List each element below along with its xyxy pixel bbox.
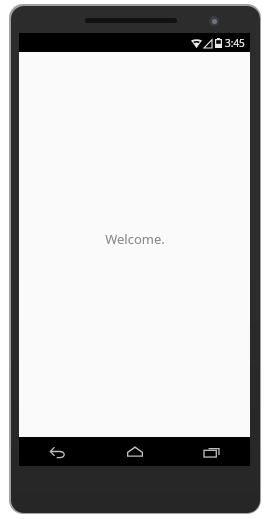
staticText: 3:45	[225, 36, 245, 50]
button[interactable]: Home	[96, 437, 173, 466]
button[interactable]: Recent apps	[173, 437, 250, 466]
button[interactable]: Back	[19, 437, 96, 466]
staticText: Welcome.	[105, 230, 165, 248]
